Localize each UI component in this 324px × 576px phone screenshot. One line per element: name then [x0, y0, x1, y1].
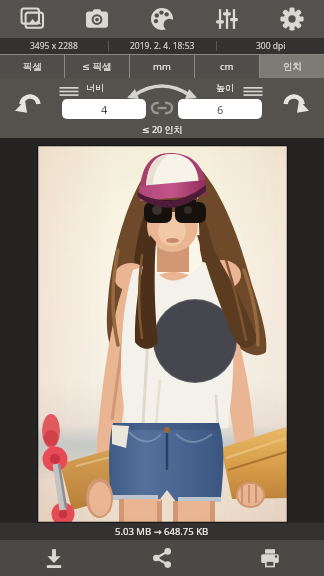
button[interactable] [216, 540, 324, 576]
staticText: 너비 [86, 82, 104, 93]
button[interactable]: 인치 [260, 55, 324, 78]
staticText: mm [153, 60, 171, 73]
button[interactable] [129, 0, 194, 38]
button[interactable] [64, 0, 129, 38]
button[interactable]: cm [195, 55, 259, 78]
staticText: 300 dpi [256, 40, 286, 52]
staticText: 높이 [216, 82, 234, 93]
button[interactable] [0, 540, 108, 576]
button[interactable] [148, 94, 176, 122]
button[interactable] [0, 0, 64, 38]
staticText: ≤ 20 인치 [142, 123, 183, 135]
staticText: 3495 x 2288 [30, 40, 78, 52]
staticText: 4 [101, 102, 108, 117]
staticText: 2019. 2. 4. 18:53 [130, 40, 195, 52]
button[interactable]: 6 [178, 99, 262, 119]
button[interactable]: 4 [62, 99, 146, 119]
staticText: 6 [217, 102, 224, 117]
staticText: cm [220, 60, 234, 73]
button[interactable] [13, 89, 47, 123]
button[interactable] [259, 0, 324, 38]
button[interactable]: mm [130, 55, 194, 78]
button[interactable] [277, 89, 311, 123]
staticText: 픽셀 [23, 61, 42, 73]
button[interactable] [57, 83, 83, 99]
button[interactable]: ≤ 픽셀 [65, 55, 129, 78]
button[interactable] [241, 83, 267, 99]
staticText: 5.03 MB → 648.75 KB [115, 525, 209, 538]
button[interactable] [194, 0, 259, 38]
button[interactable]: 픽셀 [0, 55, 64, 78]
staticText: 인치 [283, 61, 302, 73]
staticText: ≤ 픽셀 [82, 60, 112, 73]
button[interactable] [108, 540, 216, 576]
